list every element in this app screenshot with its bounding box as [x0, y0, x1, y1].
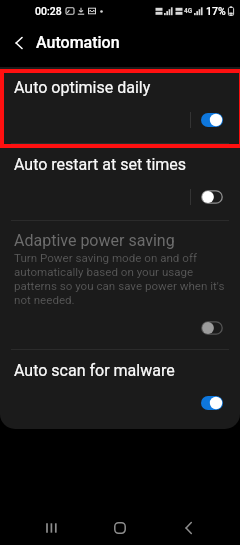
staticText: 17%	[206, 5, 226, 17]
button[interactable]: Switch off	[201, 190, 223, 204]
button[interactable]: Switch on	[201, 113, 223, 127]
staticText: Auto scan for malware	[14, 361, 175, 380]
button[interactable]: Home	[96, 508, 144, 545]
staticText: 4G	[184, 7, 193, 15]
button[interactable]: Recent apps	[27, 508, 75, 545]
button[interactable]: Switch on	[201, 396, 223, 410]
staticText: Adaptive power saving	[14, 231, 175, 250]
button[interactable]: Adaptive power saving	[0, 221, 240, 349]
button[interactable]: Switch off	[201, 321, 223, 335]
button[interactable]: Navigate up	[0, 22, 36, 67]
button[interactable]: Auto optimise daily	[0, 67, 240, 143]
button[interactable]: Auto restart at set times	[0, 144, 240, 220]
staticText: Auto restart at set times	[14, 155, 187, 174]
staticText: Auto optimise daily	[14, 78, 151, 97]
button[interactable]: Auto scan for malware	[0, 350, 240, 429]
staticText: Turn Power saving mode on and off automa…	[14, 251, 228, 307]
staticText: Automation	[36, 33, 120, 52]
button[interactable]: Back	[164, 508, 212, 545]
staticText: 00:28	[35, 5, 62, 17]
